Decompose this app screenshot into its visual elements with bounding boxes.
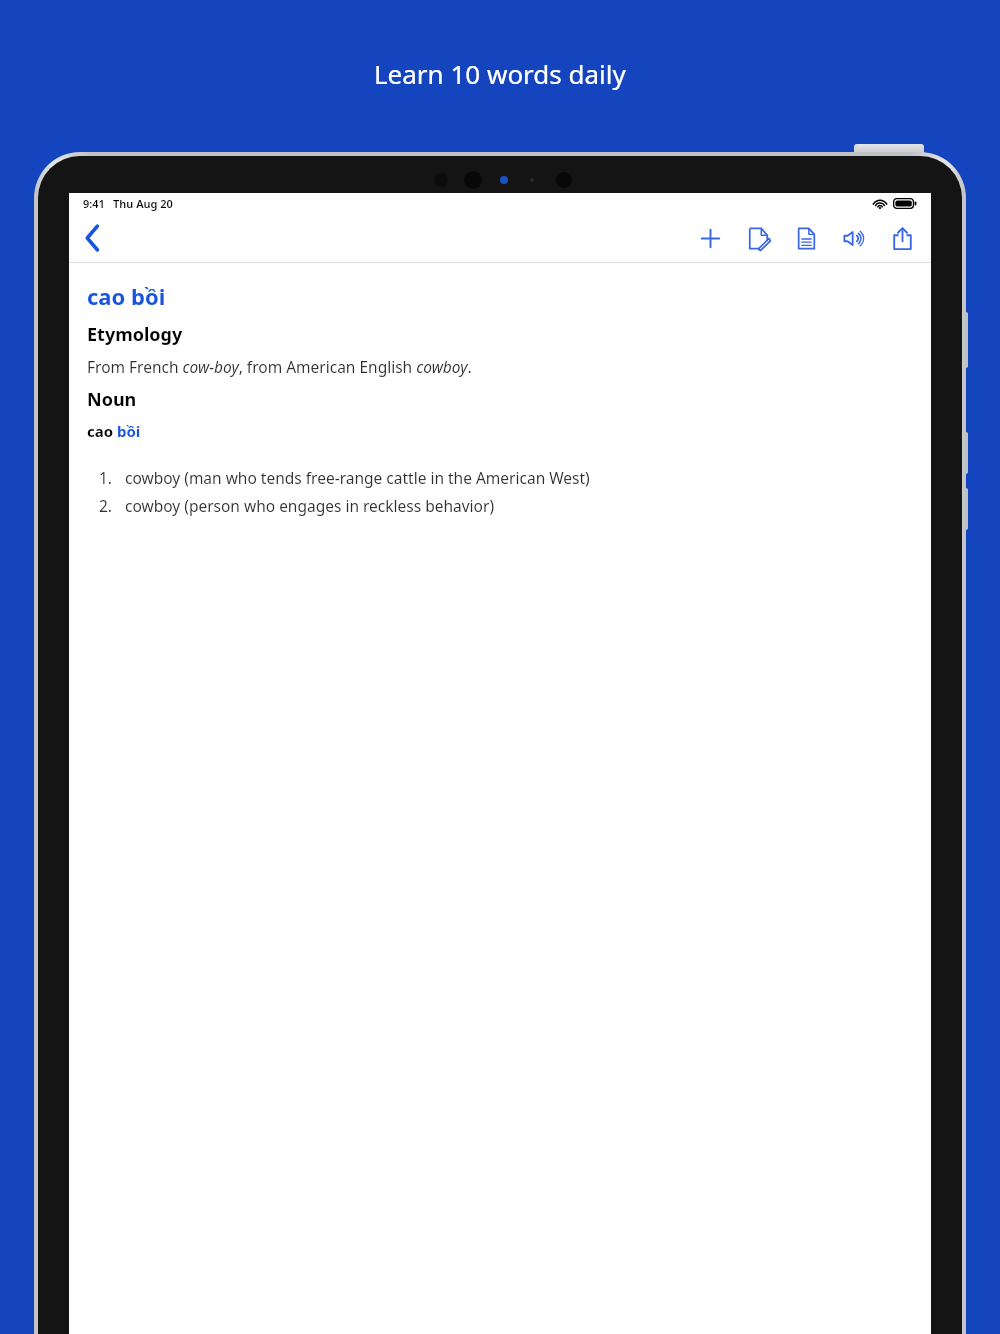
staticText: Thu Aug 20 [113,196,173,211]
staticText: Learn 10 words daily [374,56,626,91]
button[interactable]: Document [785,217,827,259]
staticText: Etymology [87,322,183,347]
button[interactable]: Edit note [737,217,779,259]
staticText: 1. [99,467,113,488]
button[interactable]: Pronounce [833,217,875,259]
button[interactable]: Add [689,217,731,259]
button[interactable]: Share [881,217,923,259]
staticText: cao bồi [87,421,141,441]
staticText: 2. [99,495,113,516]
staticText: cowboy (man who tends free-range cattle … [125,467,590,488]
staticText: From French cow-boy, from American Engli… [87,356,472,377]
staticText: cowboy (person who engages in reckless b… [125,495,495,516]
staticText: cao bồi [87,281,166,311]
staticText: 9:41 [83,196,105,211]
button[interactable]: Back [73,218,113,258]
staticText: Noun [87,387,137,412]
